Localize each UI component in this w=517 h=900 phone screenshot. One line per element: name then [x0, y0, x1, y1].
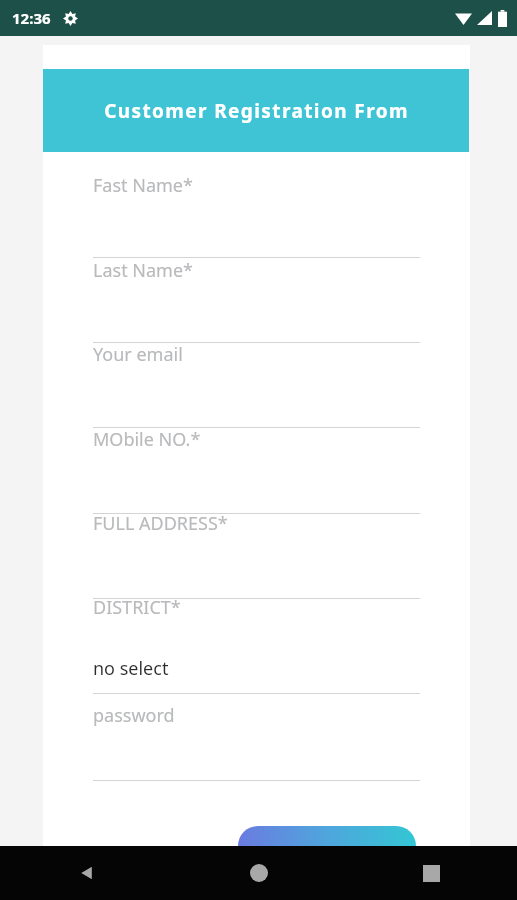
button[interactable]: Your email [93, 342, 423, 431]
staticText: no select [93, 656, 169, 681]
button[interactable]: FULL ADDRESS* [93, 511, 423, 602]
button[interactable]: Customer Registration From [43, 69, 469, 152]
staticText: Your email [93, 342, 183, 367]
staticText: DISTRICT* [93, 595, 181, 620]
button[interactable]: Back [0, 846, 173, 900]
button[interactable]: no select [93, 656, 423, 692]
button[interactable]: Recents [345, 846, 517, 900]
button[interactable]: Fast Name* [93, 173, 423, 261]
button[interactable]: password [93, 703, 423, 779]
button[interactable]: Submit [238, 826, 416, 866]
staticText: 12:36 [12, 8, 51, 28]
button[interactable]: MObile NO.* [93, 427, 423, 517]
staticText: password [93, 703, 175, 728]
staticText: FULL ADDRESS* [93, 511, 228, 536]
staticText: MObile NO.* [93, 427, 201, 452]
button[interactable]: Last Name* [93, 258, 423, 346]
staticText: Customer Registration From [104, 98, 409, 124]
button[interactable]: DISTRICT* [93, 595, 423, 635]
staticText: Fast Name* [93, 173, 193, 198]
button[interactable]: Home [173, 846, 345, 900]
staticText: Last Name* [93, 258, 194, 283]
